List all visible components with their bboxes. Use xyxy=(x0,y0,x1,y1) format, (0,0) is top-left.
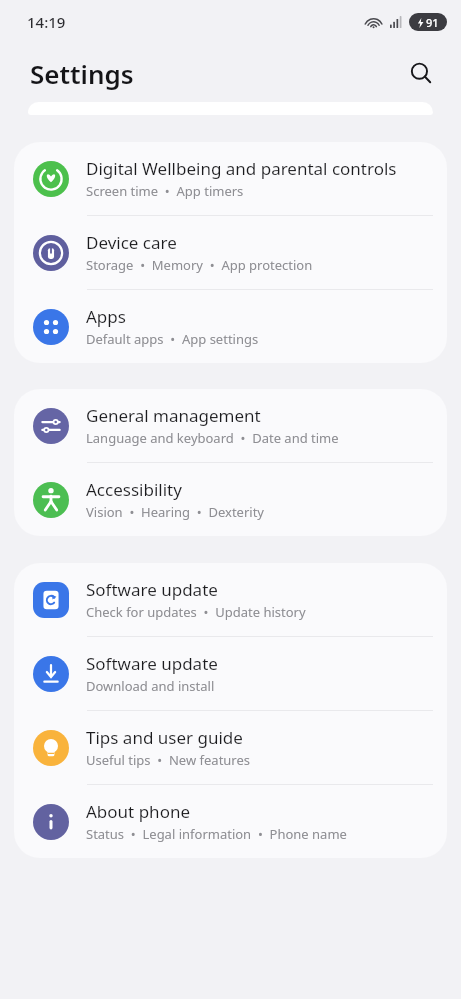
button[interactable]: Apps xyxy=(14,290,447,363)
button[interactable]: Software update xyxy=(14,637,447,710)
staticText: Vision • Hearing • Dexterity xyxy=(86,503,264,521)
button[interactable]: Software update xyxy=(14,563,447,636)
staticText: Check for updates • Update history xyxy=(86,603,306,621)
staticText: Download and install xyxy=(86,677,215,695)
staticText: 91 xyxy=(426,15,439,30)
button[interactable]: About phone xyxy=(14,785,447,858)
staticText: 14:19 xyxy=(27,12,66,32)
button[interactable]: Tips and user guide xyxy=(14,711,447,784)
staticText: Screen time • App timers xyxy=(86,182,244,200)
button[interactable]: Search xyxy=(399,51,443,95)
staticText: Software update xyxy=(86,652,218,675)
staticText: Accessibility xyxy=(86,478,182,501)
staticText: Useful tips • New features xyxy=(86,751,251,769)
staticText: Settings xyxy=(30,56,134,91)
staticText: Default apps • App settings xyxy=(86,330,259,348)
staticText: Device care xyxy=(86,231,177,254)
button[interactable]: Accessibility xyxy=(14,463,447,536)
button[interactable]: General management xyxy=(14,389,447,462)
staticText: Status • Legal information • Phone name xyxy=(86,825,347,843)
staticText: Tips and user guide xyxy=(86,726,243,749)
staticText: General management xyxy=(86,404,261,427)
button[interactable]: Device care xyxy=(14,216,447,289)
staticText: Digital Wellbeing and parental controls xyxy=(86,157,397,180)
staticText: Language and keyboard • Date and time xyxy=(86,429,339,447)
staticText: Apps xyxy=(86,305,126,328)
staticText: About phone xyxy=(86,800,191,823)
staticText: Storage • Memory • App protection xyxy=(86,256,313,274)
staticText: Software update xyxy=(86,578,218,601)
button[interactable]: Digital Wellbeing and parental controls xyxy=(14,142,447,215)
